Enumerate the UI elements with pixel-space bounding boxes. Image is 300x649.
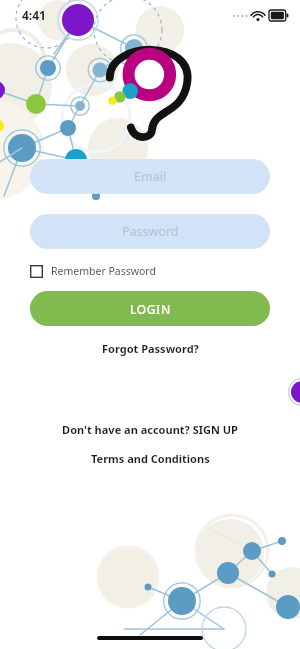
button[interactable]: Password	[30, 214, 270, 249]
button[interactable]: Remember Password	[30, 264, 300, 278]
button[interactable]: LOGIN	[30, 291, 270, 326]
staticText: Terms and Conditions	[91, 451, 210, 466]
button[interactable]: Forgot Password?	[96, 339, 205, 358]
staticText: 4:41	[22, 7, 46, 23]
staticText: LOGIN	[130, 301, 171, 317]
button[interactable]: Don't have an account? SIGN UP	[56, 420, 244, 439]
button[interactable]: Terms and Conditions	[85, 449, 216, 468]
staticText: Forgot Password?	[102, 341, 199, 356]
staticText: Remember Password	[51, 264, 156, 278]
staticText: Password	[122, 223, 179, 240]
staticText: Email	[134, 168, 167, 185]
button[interactable]: Email	[30, 159, 270, 194]
staticText: Don't have an account? SIGN UP	[62, 422, 238, 437]
